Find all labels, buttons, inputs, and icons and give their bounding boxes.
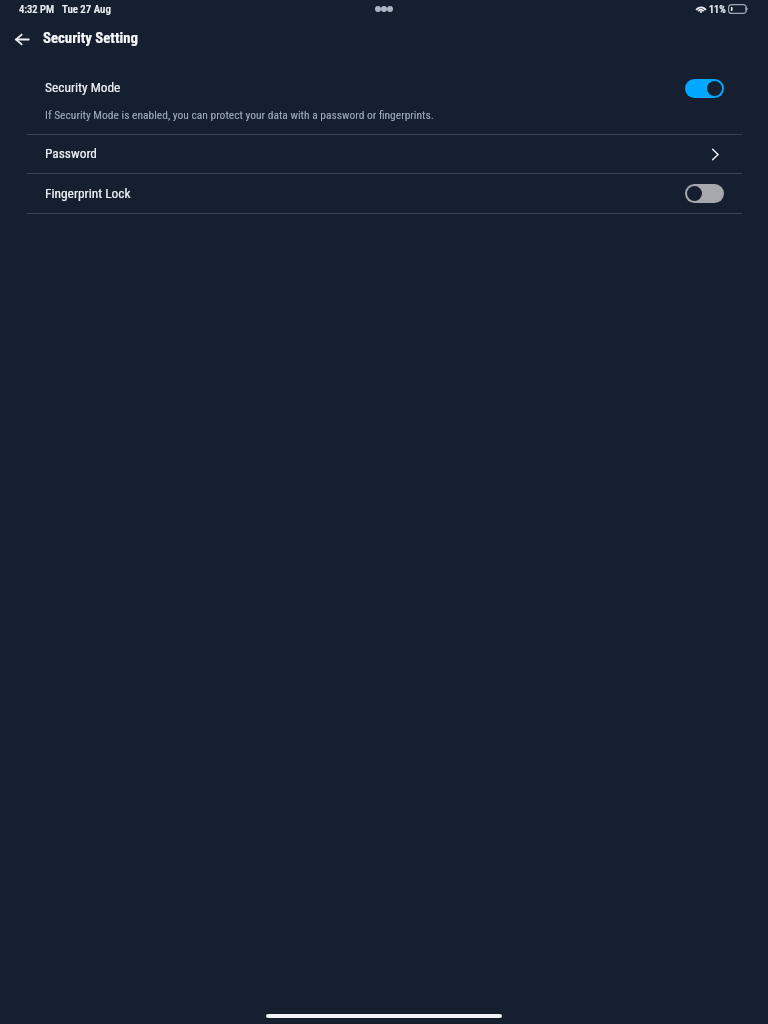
- staticText: Tue 27 Aug: [62, 3, 111, 16]
- button[interactable]: Security Mode: [0, 70, 768, 134]
- button[interactable]: Password: [0, 135, 768, 173]
- staticText: Password: [45, 146, 715, 162]
- staticText: Security Setting: [43, 29, 138, 46]
- button[interactable]: Back: [5, 25, 39, 54]
- staticText: Security Mode: [45, 80, 121, 96]
- button[interactable]: Fingerprint Lock: [0, 174, 768, 213]
- staticText: If Security Mode is enabled, you can pro…: [45, 108, 434, 121]
- staticText: 11%: [709, 4, 726, 16]
- staticText: 4:32 PM: [19, 3, 54, 15]
- staticText: Fingerprint Lock: [45, 186, 685, 202]
- other: Open password settings: [711, 148, 719, 161]
- button[interactable]: Fingerprint Lock disabled: [685, 184, 724, 203]
- button[interactable]: Security Mode enabled: [685, 79, 724, 98]
